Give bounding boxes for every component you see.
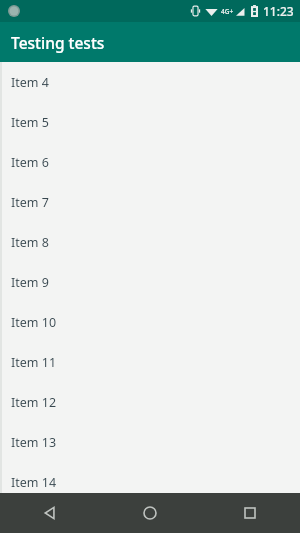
button[interactable]: Home bbox=[100, 493, 200, 533]
button[interactable]: Item 5 bbox=[0, 102, 300, 142]
button[interactable]: Item 7 bbox=[0, 182, 300, 222]
staticText: Item 10 bbox=[11, 314, 57, 331]
staticText: Item 9 bbox=[11, 274, 49, 291]
staticText: 11:23 bbox=[263, 3, 294, 19]
staticText: Item 12 bbox=[11, 394, 57, 411]
button[interactable]: Item 12 bbox=[0, 382, 300, 422]
staticText: Item 5 bbox=[11, 114, 49, 131]
staticText: Item 14 bbox=[11, 474, 57, 491]
staticText: Item 6 bbox=[11, 154, 49, 171]
staticText: Testing tests bbox=[11, 32, 105, 53]
button[interactable]: Item 10 bbox=[0, 302, 300, 342]
button[interactable]: Item 4 bbox=[0, 62, 300, 102]
button[interactable]: Item 8 bbox=[0, 222, 300, 262]
button[interactable]: Item 9 bbox=[0, 262, 300, 302]
button[interactable]: Back bbox=[0, 493, 100, 533]
button[interactable]: Item 6 bbox=[0, 142, 300, 182]
button[interactable]: Recent apps bbox=[200, 493, 300, 533]
staticText: Item 7 bbox=[11, 194, 49, 211]
staticText: Item 8 bbox=[11, 234, 49, 251]
staticText: Item 11 bbox=[11, 354, 57, 371]
staticText: 4G+ bbox=[221, 7, 234, 16]
button[interactable]: Item 11 bbox=[0, 342, 300, 382]
button[interactable]: Item 14 bbox=[0, 462, 300, 493]
button[interactable]: Item 13 bbox=[0, 422, 300, 462]
staticText: Item 4 bbox=[11, 74, 49, 91]
staticText: Item 13 bbox=[11, 434, 57, 451]
